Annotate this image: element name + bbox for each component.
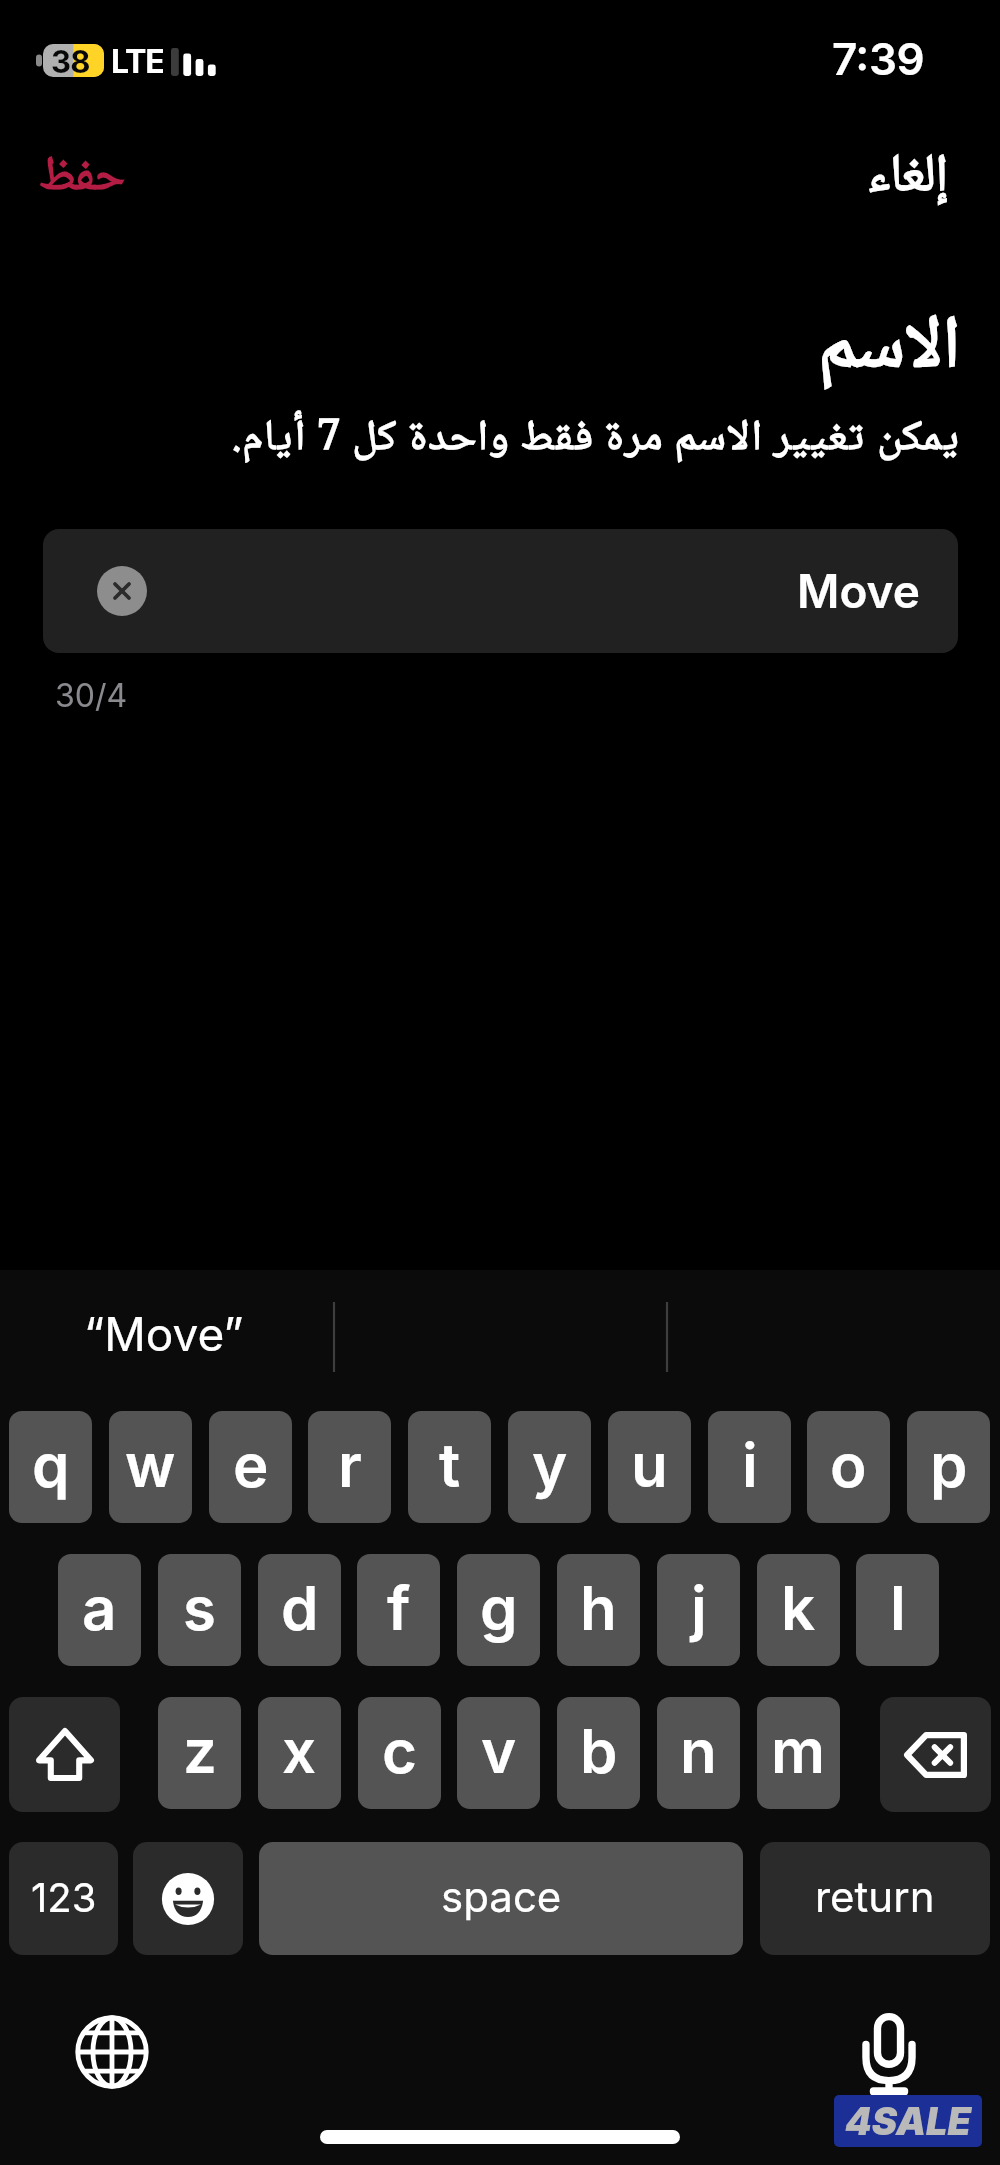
button[interactable]: Clear text — [97, 566, 147, 616]
button[interactable]: Dictation — [843, 2011, 935, 2101]
staticText: i — [742, 1429, 758, 1502]
staticText: p — [930, 1429, 968, 1502]
staticText: إلغاء — [867, 134, 948, 223]
staticText: 7:39 — [832, 32, 925, 85]
button[interactable]: g — [457, 1554, 540, 1666]
staticText: x — [282, 1715, 317, 1788]
staticText: s — [183, 1572, 216, 1645]
button[interactable]: c — [358, 1697, 441, 1809]
staticText: 38 — [51, 43, 90, 81]
staticText: return — [815, 1871, 935, 1922]
button[interactable]: Shift — [9, 1697, 120, 1812]
button[interactable]: return — [760, 1842, 990, 1955]
staticText: o — [830, 1429, 867, 1502]
button[interactable]: p — [907, 1411, 990, 1523]
button[interactable]: e — [209, 1411, 292, 1523]
staticText: “Move” — [84, 1306, 244, 1362]
staticText: u — [631, 1429, 668, 1502]
staticText: g — [480, 1572, 518, 1645]
button[interactable]: w — [109, 1411, 192, 1523]
staticText: l — [890, 1572, 906, 1645]
staticText: q — [32, 1429, 70, 1502]
button[interactable]: v — [457, 1697, 540, 1809]
staticText: z — [183, 1715, 217, 1788]
staticText: 4SALE — [845, 2098, 972, 2144]
staticText: j — [691, 1572, 707, 1645]
button[interactable]: k — [757, 1554, 840, 1666]
staticText: b — [580, 1715, 618, 1788]
button[interactable]: Emoji keyboard — [133, 1842, 243, 1955]
staticText: 123 — [31, 1873, 97, 1921]
button[interactable]: l — [856, 1554, 939, 1666]
staticText: حفظ — [38, 138, 125, 220]
button[interactable]: 123 — [9, 1842, 118, 1955]
staticText: w — [125, 1429, 176, 1502]
staticText: d — [281, 1572, 319, 1645]
button[interactable]: Backspace — [880, 1697, 991, 1812]
button[interactable]: o — [807, 1411, 890, 1523]
staticText: Move — [797, 563, 920, 619]
staticText: r — [338, 1429, 362, 1502]
button[interactable]: a — [58, 1554, 141, 1666]
staticText: t — [439, 1429, 461, 1502]
staticText: f — [387, 1572, 411, 1645]
staticText: k — [781, 1572, 816, 1645]
staticText: e — [233, 1429, 269, 1502]
staticText: v — [481, 1715, 517, 1788]
button[interactable]: Change keyboard language — [66, 2006, 158, 2098]
button[interactable]: t — [408, 1411, 491, 1523]
button[interactable]: h — [557, 1554, 640, 1666]
button[interactable]: b — [557, 1697, 640, 1809]
button[interactable]: space — [259, 1842, 743, 1955]
button[interactable]: “Move” — [62, 1292, 266, 1376]
staticText: 30/4 — [55, 676, 128, 715]
button[interactable]: n — [657, 1697, 740, 1809]
button[interactable]: إلغاء — [843, 118, 972, 239]
button[interactable]: j — [657, 1554, 740, 1666]
button[interactable]: s — [158, 1554, 241, 1666]
button[interactable]: m — [757, 1697, 840, 1809]
button[interactable]: q — [9, 1411, 92, 1523]
staticText: c — [382, 1715, 417, 1788]
button[interactable]: x — [258, 1697, 341, 1809]
staticText: m — [771, 1715, 826, 1788]
button[interactable]: r — [308, 1411, 391, 1523]
staticText: LTE — [111, 42, 164, 81]
button[interactable]: حفظ — [14, 122, 149, 236]
staticText: n — [680, 1715, 717, 1788]
staticText: a — [82, 1572, 117, 1645]
button[interactable]: u — [608, 1411, 691, 1523]
button[interactable]: d — [258, 1554, 341, 1666]
staticText: يمكن تغيير الاسم مرة فقط واحدة كل 7 أيام… — [232, 404, 960, 476]
staticText: space — [441, 1871, 562, 1922]
staticText: الاسم — [818, 288, 960, 412]
button[interactable]: y — [508, 1411, 591, 1523]
button[interactable]: Clear text — [43, 529, 958, 653]
button[interactable]: f — [357, 1554, 440, 1666]
staticText: h — [580, 1572, 617, 1645]
button[interactable]: z — [158, 1697, 241, 1809]
button[interactable]: i — [708, 1411, 791, 1523]
staticText: y — [532, 1429, 568, 1502]
